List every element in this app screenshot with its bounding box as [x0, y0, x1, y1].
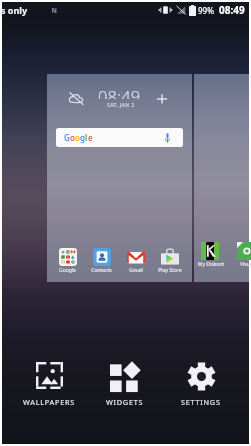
- staticText: s only: [1, 4, 28, 16]
- staticText: Contacts: [91, 267, 112, 274]
- staticText: My Diskont: [194, 261, 228, 268]
- button[interactable]: 08:49: [47, 74, 192, 282]
- button[interactable]: WIDGETS: [87, 360, 163, 410]
- button[interactable]: SETTINGS: [163, 360, 239, 410]
- button[interactable]: My Diskont: [194, 242, 230, 274]
- staticText: o: [70, 132, 75, 143]
- staticText: Google: [59, 267, 76, 274]
- button[interactable]: Gmail: [123, 248, 148, 274]
- button[interactable]: Visual: [230, 242, 251, 274]
- staticText: 99%: [198, 5, 214, 16]
- staticText: Gmail: [129, 267, 143, 274]
- staticText: WIDGETS: [106, 397, 144, 407]
- button[interactable]: WALLPAPERS: [12, 360, 87, 410]
- staticText: g: [80, 132, 85, 143]
- staticText: Play Store: [158, 267, 182, 274]
- button[interactable]: Contacts: [89, 248, 114, 274]
- staticText: l: [85, 132, 88, 143]
- staticText: e: [88, 132, 93, 143]
- staticText: 08:49: [219, 3, 245, 17]
- staticText: o: [75, 132, 80, 143]
- button[interactable]: My Diskont: [194, 74, 249, 282]
- button[interactable]: Add widget: [157, 94, 167, 104]
- staticText: 08:49: [98, 85, 141, 99]
- staticText: SAT, JAN 2: [107, 101, 135, 108]
- staticText: G: [64, 132, 70, 143]
- button[interactable]: G: [56, 128, 183, 147]
- button[interactable]: Play Store: [157, 248, 182, 274]
- button[interactable]: Google: [55, 248, 80, 274]
- staticText: WALLPAPERS: [23, 397, 76, 407]
- staticText: SETTINGS: [181, 397, 221, 407]
- staticText: Visual: [230, 261, 251, 268]
